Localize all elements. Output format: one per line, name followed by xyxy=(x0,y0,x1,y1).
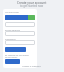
button[interactable] xyxy=(5,40,35,45)
staticText: Create your account xyxy=(17,1,47,5)
button[interactable] xyxy=(5,47,26,52)
staticText: Account plan xyxy=(5,11,20,14)
button[interactable] xyxy=(5,59,20,64)
staticText: Email address xyxy=(5,29,21,32)
staticText: Password xyxy=(5,38,16,41)
button[interactable] xyxy=(5,31,35,36)
staticText: Already a member? xyxy=(22,65,42,68)
staticText: to get started now xyxy=(20,4,44,8)
button[interactable] xyxy=(5,15,35,20)
staticText: to our terms xyxy=(5,56,18,59)
button[interactable] xyxy=(5,22,35,27)
staticText: By signing up you agree xyxy=(5,54,29,57)
